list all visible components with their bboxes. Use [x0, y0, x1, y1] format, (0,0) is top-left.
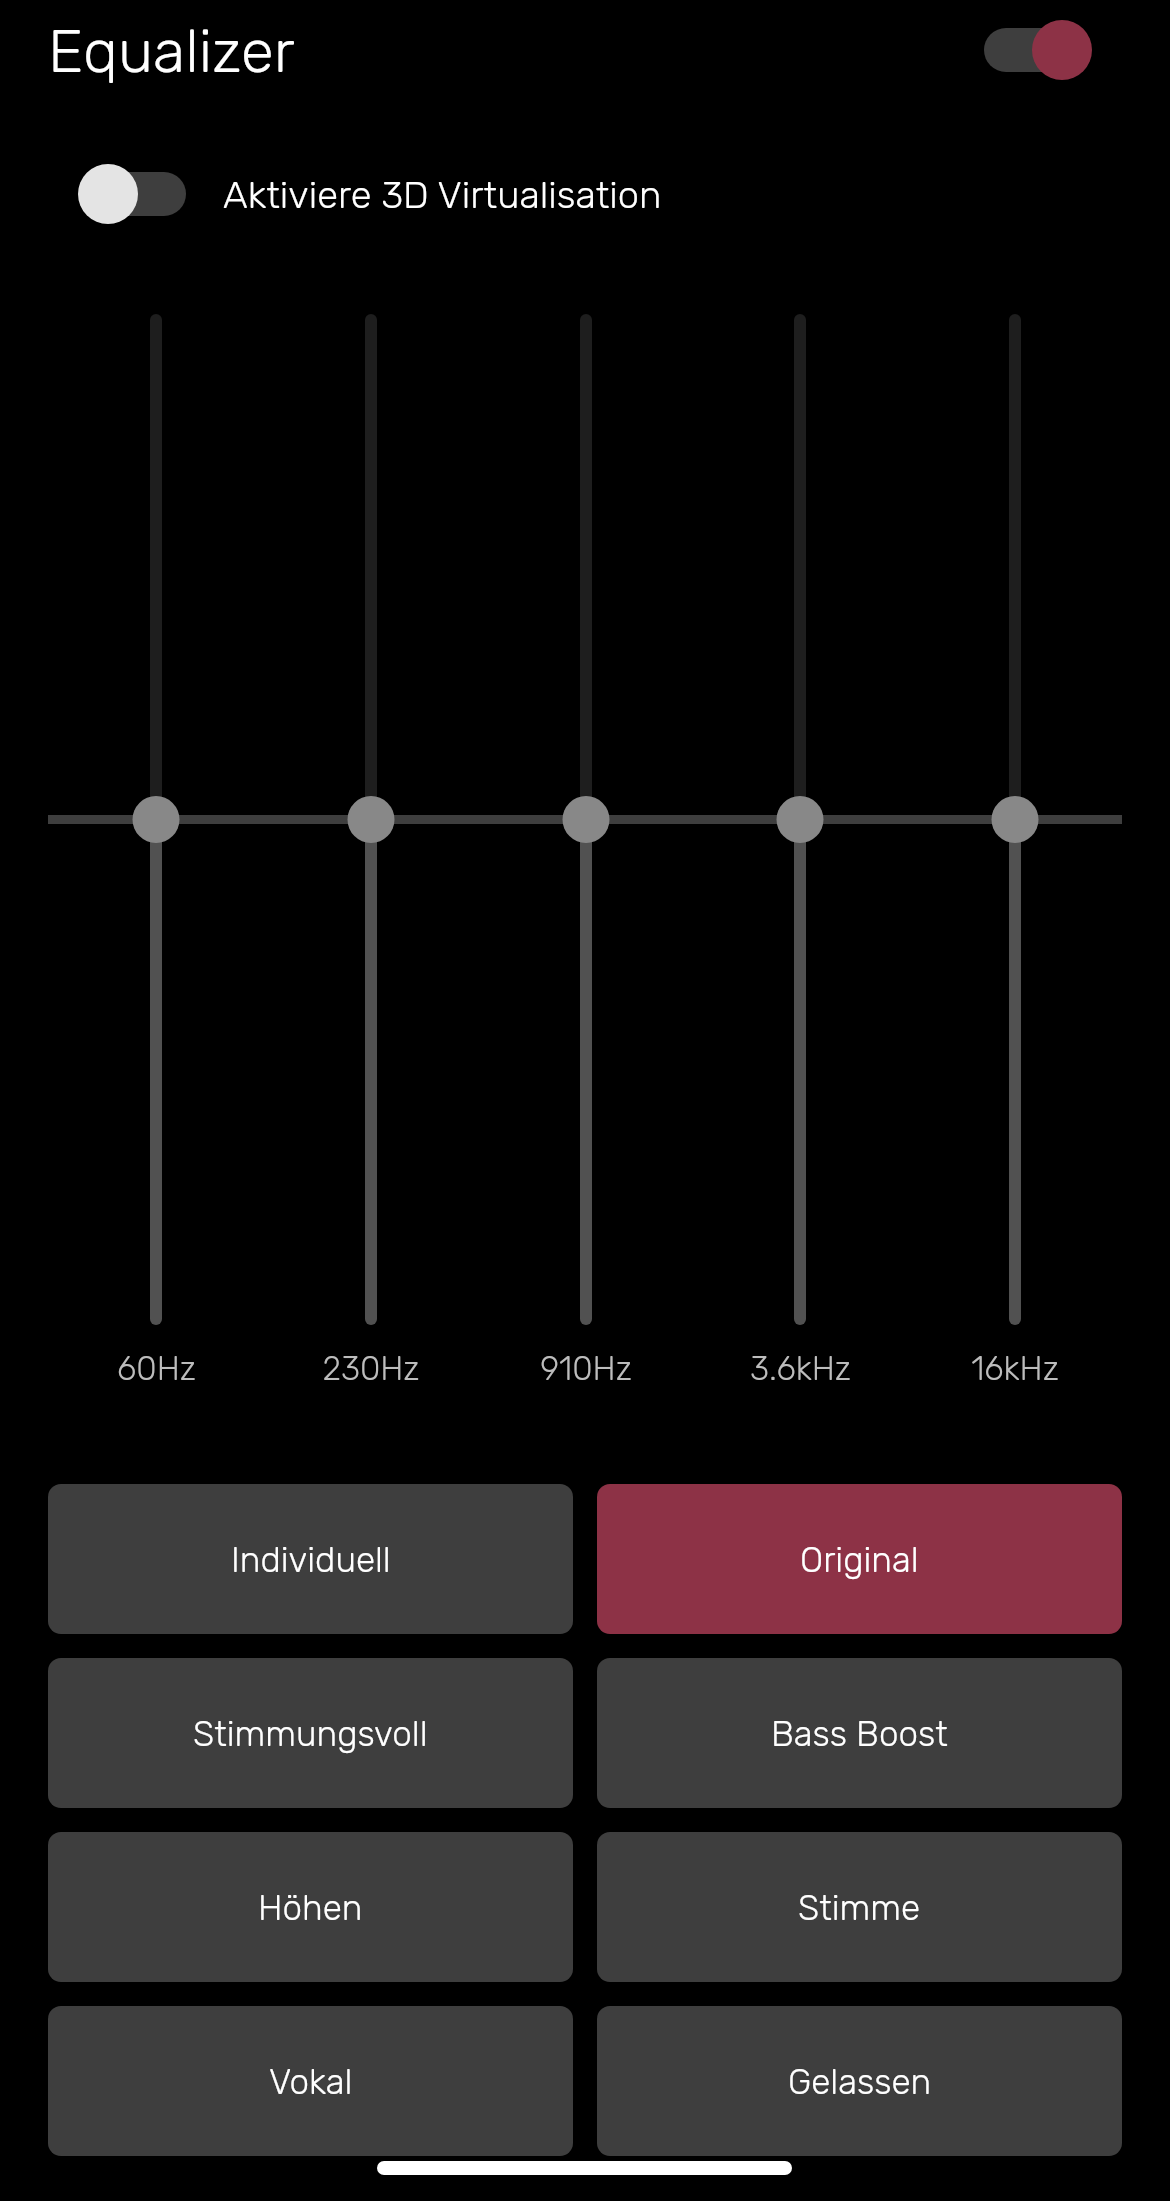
staticText: 3.6kHz — [750, 1349, 851, 1388]
staticText: Individuell — [231, 1539, 391, 1580]
staticText: Original — [800, 1539, 919, 1580]
staticText: Bass Boost — [771, 1713, 948, 1754]
button[interactable]: 16kHz Regler — [975, 314, 1055, 1325]
staticText: 230Hz — [322, 1349, 420, 1388]
button[interactable]: Original — [597, 1484, 1122, 1634]
staticText: 60Hz — [117, 1349, 196, 1388]
button[interactable]: 230Hz Regler — [331, 314, 411, 1325]
button[interactable]: Aktiviere 3D Virtualisation — [78, 162, 662, 226]
button[interactable]: Equalizer ein- oder ausschalten — [964, 18, 1092, 82]
button[interactable]: Individuell — [48, 1484, 573, 1634]
staticText: Stimmungsvoll — [193, 1713, 428, 1754]
staticText: Equalizer — [48, 16, 295, 87]
button[interactable]: Gelassen — [597, 2006, 1122, 2156]
button[interactable]: Stimmungsvoll — [48, 1658, 573, 1808]
staticText: 910Hz — [540, 1349, 632, 1388]
staticText: Stimme — [798, 1887, 921, 1928]
button[interactable]: Vokal — [48, 2006, 573, 2156]
button[interactable]: 910Hz Regler — [546, 314, 626, 1325]
staticText: Höhen — [258, 1887, 363, 1928]
button[interactable]: 60Hz Regler — [116, 314, 196, 1325]
button[interactable]: Bass Boost — [597, 1658, 1122, 1808]
staticText: Gelassen — [788, 2061, 932, 2102]
staticText: 16kHz — [971, 1349, 1059, 1388]
button[interactable]: Stimme — [597, 1832, 1122, 1982]
staticText: Aktiviere 3D Virtualisation — [223, 172, 662, 217]
button[interactable]: Höhen — [48, 1832, 573, 1982]
staticText: Vokal — [269, 2061, 353, 2102]
button[interactable]: 3.6kHz Regler — [760, 314, 840, 1325]
